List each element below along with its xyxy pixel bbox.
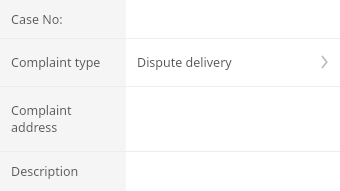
staticText: address bbox=[11, 119, 58, 136]
button[interactable]: Case No: bbox=[0, 0, 340, 38]
other: Open complaint type picker bbox=[317, 55, 331, 69]
staticText: Complaint type bbox=[11, 54, 101, 71]
button[interactable]: Complaint bbox=[0, 86, 340, 151]
staticText: Complaint bbox=[11, 102, 72, 119]
staticText: Dispute delivery bbox=[137, 54, 232, 71]
button[interactable]: Description bbox=[0, 151, 340, 191]
staticText: Description bbox=[11, 163, 79, 180]
button[interactable]: Complaint type bbox=[0, 38, 340, 86]
staticText: Case No: bbox=[11, 11, 63, 28]
